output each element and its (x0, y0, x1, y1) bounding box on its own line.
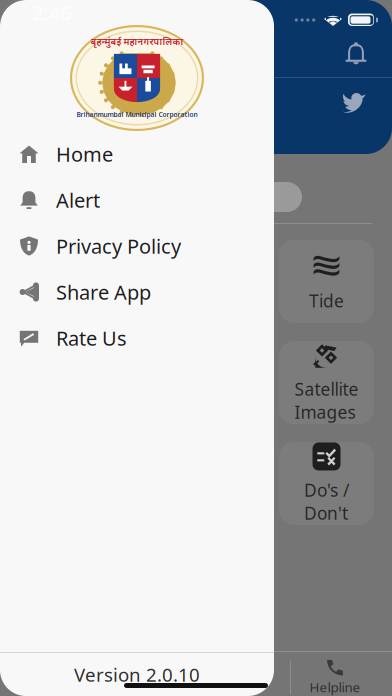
button[interactable]: Home (0, 131, 274, 177)
button[interactable]: Helpline (288, 659, 382, 695)
button[interactable]: Rate Us (0, 315, 274, 361)
staticText: Do's / Don't (304, 478, 349, 524)
button[interactable]: मराठी (196, 182, 302, 212)
staticText: Alert (56, 187, 100, 213)
staticText: Tide (309, 289, 344, 312)
button[interactable]: Privacy Policy (0, 223, 274, 269)
button[interactable]: Do's / Don't (279, 442, 374, 525)
staticText: बृहन्मुंबई महानगरपालिका (90, 35, 183, 47)
staticText: Satellite Images (294, 377, 358, 423)
staticText: Rate Us (56, 325, 127, 351)
staticText: Brihanmumbai Municipal Corporation (76, 110, 197, 119)
staticText: Privacy Policy (56, 233, 181, 259)
staticText: Version 2.0.10 (74, 662, 200, 687)
staticText: Helpline (309, 678, 360, 696)
button[interactable]: Share App (0, 269, 274, 315)
button[interactable]: Alert (0, 177, 274, 223)
button[interactable]: Satellite Images (279, 341, 374, 424)
button[interactable]: Twitter (332, 80, 376, 124)
staticText: Share App (56, 279, 151, 305)
button[interactable]: Tide (279, 240, 374, 323)
button[interactable]: Notifications (334, 32, 378, 76)
button[interactable]: English (90, 182, 196, 212)
staticText: Home (56, 141, 113, 167)
